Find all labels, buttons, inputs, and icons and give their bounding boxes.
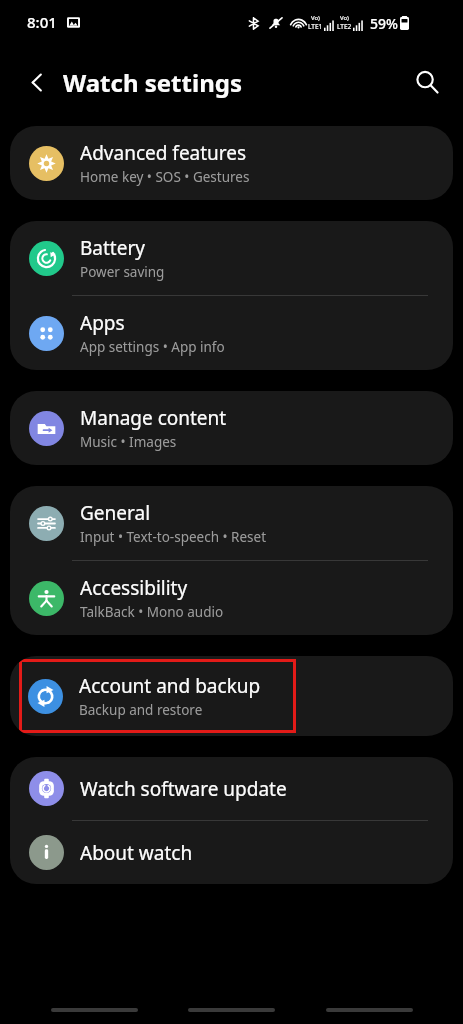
button[interactable]: Navigation [51, 1008, 138, 1012]
staticText: TalkBack • Mono audio [80, 603, 224, 621]
button[interactable]: Navigation [326, 1008, 413, 1012]
staticText: Vo) [340, 14, 349, 22]
button[interactable]: Search [405, 60, 449, 104]
staticText: Accessibility [80, 575, 188, 601]
button[interactable]: Watch software update [10, 757, 453, 820]
staticText: Power saving [80, 263, 165, 281]
staticText: App settings • App info [80, 338, 225, 356]
staticText: LTE1 [308, 22, 323, 31]
button[interactable]: Manage content [10, 391, 453, 465]
staticText: Backup and restore [79, 701, 203, 719]
button[interactable]: Back [15, 60, 59, 104]
button[interactable]: Battery [10, 221, 453, 295]
staticText: Watch settings [63, 66, 242, 99]
staticText: Input • Text-to-speech • Reset [80, 528, 267, 546]
staticText: 8:01 [27, 12, 57, 32]
staticText: 59% [370, 14, 398, 33]
staticText: Apps [80, 310, 125, 336]
button[interactable]: Navigation [188, 1008, 275, 1012]
button[interactable]: General [10, 486, 453, 560]
staticText: Music • Images [80, 433, 177, 451]
button[interactable]: Accessibility [10, 561, 453, 635]
staticText: About watch [80, 840, 193, 866]
staticText: LTE2 [337, 22, 352, 31]
staticText: Battery [80, 235, 145, 261]
staticText: Vo) [311, 14, 320, 22]
staticText: Home key • SOS • Gestures [80, 168, 250, 186]
staticText: General [80, 500, 151, 526]
staticText: Account and backup [79, 673, 261, 699]
button[interactable]: Apps [10, 296, 453, 370]
button[interactable]: Account and backup [19, 659, 296, 733]
staticText: Manage content [80, 405, 227, 431]
button[interactable]: About watch [10, 821, 453, 884]
staticText: Advanced features [80, 140, 247, 166]
button[interactable]: Advanced features [10, 126, 453, 200]
staticText: Watch software update [80, 776, 287, 802]
